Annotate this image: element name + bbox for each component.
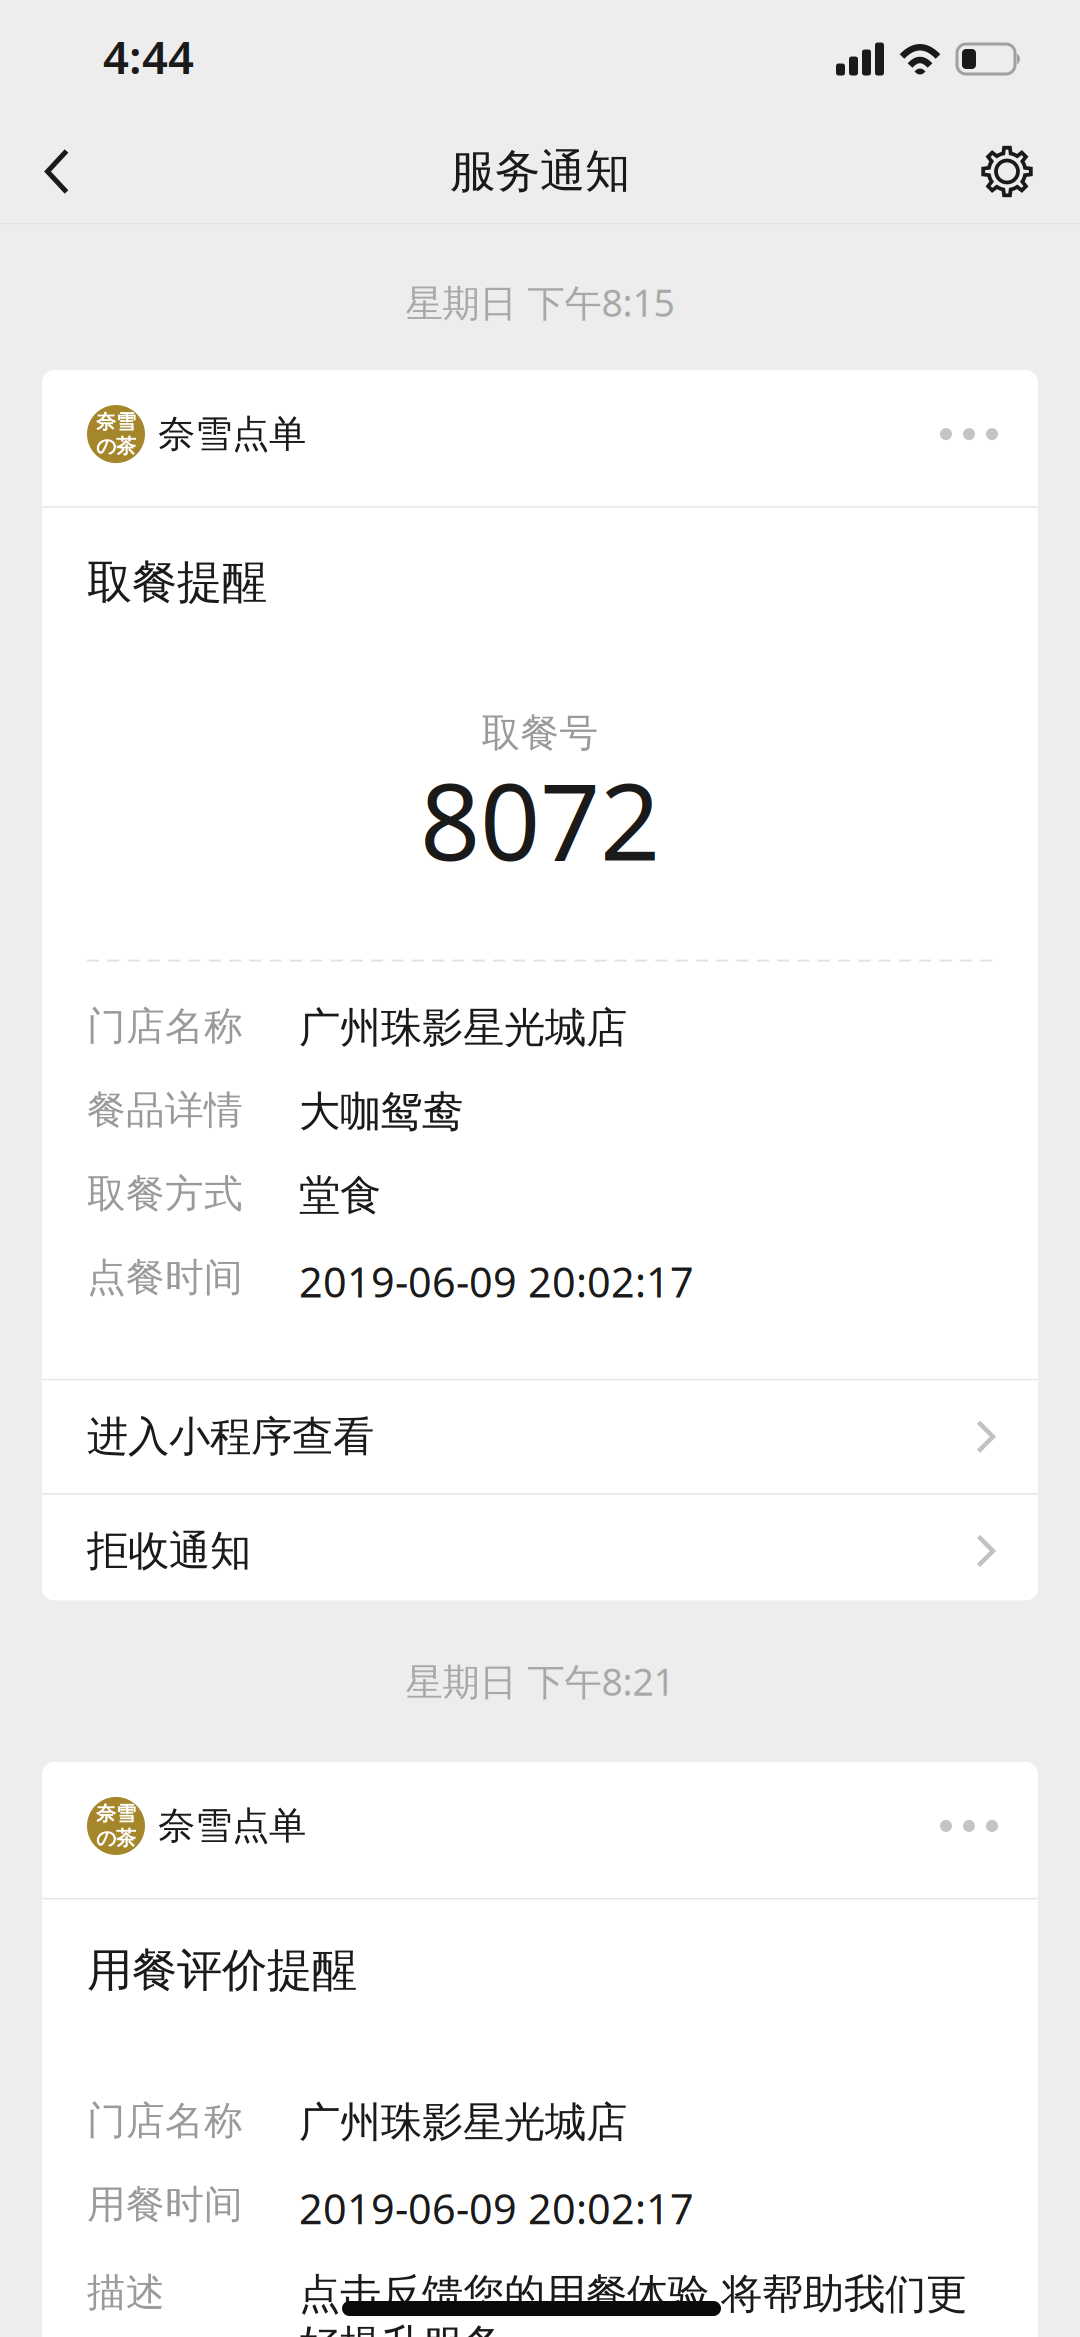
staticText: 点击反馈您的用餐体验 将帮助我们更好提升服务 (299, 2269, 967, 2337)
button[interactable]: Settings (941, 120, 1080, 223)
button[interactable]: Back (0, 120, 109, 223)
staticText: 堂食 (299, 1170, 381, 1221)
staticText: 门店名称 (87, 2097, 243, 2145)
staticText: 奈雪点单 (158, 1803, 306, 1849)
staticText: 餐品详情 (87, 1086, 243, 1134)
staticText: 拒收通知 (87, 1526, 251, 1576)
staticText: 2019-06-09 20:02:17 (299, 1254, 694, 1309)
staticText: 取餐号 (481, 709, 598, 757)
staticText: 取餐方式 (87, 1170, 243, 1218)
staticText: 星期日 下午8:15 (405, 277, 674, 327)
staticText: の茶 (96, 1826, 136, 1850)
staticText: 奈雪 (96, 409, 136, 434)
staticText: 用餐评价提醒 (87, 1942, 357, 1998)
staticText: 广州珠影星光城店 (299, 1003, 627, 1053)
button[interactable]: 奈雪 (42, 1762, 1038, 1898)
staticText: 大咖鸳鸯 (299, 1086, 463, 1137)
staticText: 星期日 下午8:21 (405, 1656, 674, 1706)
staticText: の茶 (96, 434, 136, 459)
staticText: 8072 (420, 750, 660, 890)
staticText: 描述 (87, 2269, 165, 2316)
staticText: 用餐时间 (87, 2181, 243, 2228)
staticText: 2019-06-09 20:02:17 (299, 2181, 694, 2236)
staticText: 进入小程序查看 (87, 1411, 374, 1462)
button[interactable]: 拒收通知 (42, 1495, 1038, 1600)
staticText: 门店名称 (87, 1003, 243, 1050)
button[interactable]: 进入小程序查看 (42, 1380, 1038, 1493)
staticText: 4:44 (103, 26, 194, 87)
staticText: 点餐时间 (87, 1254, 243, 1301)
staticText: 奈雪 (96, 1801, 136, 1826)
button[interactable]: 奈雪 (42, 370, 1038, 506)
staticText: 服务通知 (450, 144, 630, 199)
staticText: 广州珠影星光城店 (299, 2097, 627, 2148)
staticText: 奈雪点单 (158, 411, 306, 457)
staticText: 取餐提醒 (87, 555, 267, 610)
